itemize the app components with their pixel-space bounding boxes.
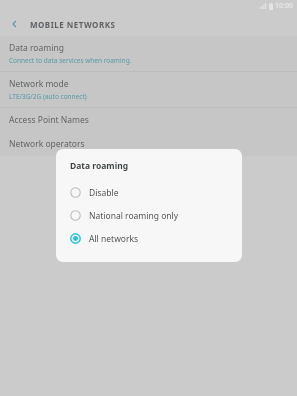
button[interactable]: Network mode — [0, 72, 297, 107]
staticText: Network operators — [9, 138, 85, 150]
button[interactable]: Network operators — [0, 132, 297, 156]
staticText: Data roaming — [9, 42, 64, 54]
staticText: Network mode — [9, 78, 69, 90]
button[interactable]: Disable — [56, 181, 242, 204]
button[interactable]: National roaming only — [56, 204, 242, 227]
staticText: Access Point Names — [9, 114, 89, 126]
staticText: 10:00 — [275, 1, 293, 11]
staticText: Data roaming — [70, 160, 129, 172]
button[interactable]: Access Point Names — [0, 108, 297, 132]
staticText: Connect to data services when roaming. — [9, 56, 132, 65]
button[interactable]: Data roaming — [0, 36, 297, 71]
staticText: All networks — [89, 233, 139, 245]
staticText: Disable — [89, 187, 119, 199]
staticText: National roaming only — [89, 210, 179, 222]
staticText: LTE/3G/2G (auto connect) — [9, 92, 87, 101]
staticText: MOBILE NETWORKS — [30, 19, 116, 30]
button[interactable]: Back — [0, 12, 30, 36]
button[interactable]: All networks — [56, 227, 242, 250]
